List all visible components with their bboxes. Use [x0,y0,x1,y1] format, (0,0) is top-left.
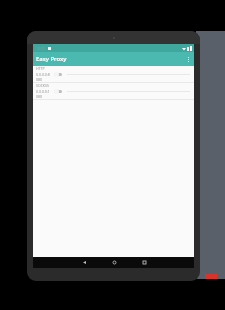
button[interactable]: Toggle proxy [54,87,63,96]
staticText: Easy Proxy [36,55,67,63]
button[interactable]: SOCKS5 [33,83,194,99]
staticText: 0.0.0.0:8080 [36,72,51,82]
button[interactable]: HTTP [33,66,194,82]
button[interactable]: Back [76,257,92,268]
staticText: SOCKS5 [36,83,49,88]
staticText: 12:21 [36,46,45,51]
button[interactable]: Home [106,257,122,268]
staticText: 0.0.0.0:1080 [36,89,51,99]
staticText: HTTP [36,66,45,71]
button[interactable]: Toggle proxy [54,70,63,79]
button[interactable]: Recent apps [136,257,152,268]
button[interactable]: More options [182,53,194,65]
